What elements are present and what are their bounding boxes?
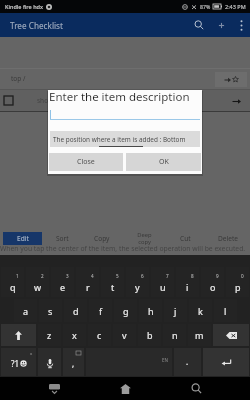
button[interactable]: Search <box>188 13 210 37</box>
button[interactable]: Home <box>113 377 137 400</box>
button[interactable]: w <box>26 267 49 297</box>
staticText: 4 <box>91 273 94 279</box>
staticText: j <box>174 305 177 317</box>
staticText: o <box>210 281 216 293</box>
button[interactable]: Cut <box>167 231 203 246</box>
staticText: n <box>172 329 178 341</box>
staticText: z <box>47 329 52 341</box>
button[interactable]: c <box>88 324 111 346</box>
staticText: , <box>72 358 75 369</box>
button[interactable]: g <box>114 299 137 322</box>
staticText: ?1 <box>11 358 20 369</box>
staticText: w <box>34 281 42 293</box>
button[interactable]: Hide keyboard <box>42 377 66 400</box>
staticText: x <box>30 351 33 357</box>
button[interactable]: Close <box>49 153 123 171</box>
button[interactable]: e <box>51 267 74 297</box>
staticText: v <box>122 329 127 341</box>
staticText: Cut <box>180 234 191 243</box>
staticText: EN <box>162 357 169 363</box>
staticText: 9 <box>216 273 219 279</box>
staticText: s <box>48 305 53 317</box>
button[interactable]: Sort <box>44 231 80 246</box>
button[interactable]: f <box>89 299 112 322</box>
button[interactable]: r <box>76 267 99 297</box>
staticText: OK <box>159 157 169 167</box>
staticText: The position where a item is added : Bot… <box>53 135 186 144</box>
button[interactable]: Move item <box>222 90 250 112</box>
button[interactable]: . <box>174 348 201 376</box>
staticText: Sort <box>56 234 69 243</box>
button[interactable]: More options <box>232 13 250 37</box>
button[interactable]: ?1 <box>1 348 36 376</box>
button[interactable]: y <box>126 267 149 297</box>
staticText: g <box>123 305 129 317</box>
staticText: k <box>198 305 203 317</box>
button[interactable]: v <box>113 324 136 346</box>
staticText: u <box>160 281 166 293</box>
button[interactable]: Deep copy <box>131 231 157 246</box>
staticText: d <box>73 305 79 317</box>
staticText: Close <box>77 157 95 167</box>
button[interactable]: Add to favourites <box>215 72 247 87</box>
staticText: Deep copy <box>137 231 152 246</box>
staticText: top / <box>11 74 26 83</box>
button[interactable]: b <box>138 324 161 346</box>
button[interactable]: h <box>139 299 162 322</box>
staticText: a <box>23 305 29 317</box>
button[interactable]: Search <box>184 377 208 400</box>
staticText: sho <box>37 96 49 105</box>
staticText: 2 <box>41 273 44 279</box>
button[interactable]: a <box>14 299 37 322</box>
staticText: . <box>186 356 189 367</box>
staticText: p <box>235 281 241 293</box>
staticText: q <box>10 281 16 293</box>
button[interactable]: j <box>164 299 187 322</box>
staticText: x <box>72 329 77 341</box>
button[interactable]: p <box>226 267 249 297</box>
staticText: 7 <box>166 273 169 279</box>
button[interactable]: , <box>63 348 84 376</box>
button[interactable]: Add item <box>210 13 232 37</box>
staticText: Kindle fire hdx <box>5 3 43 10</box>
staticText: l <box>224 305 227 317</box>
button[interactable]: Voice input <box>38 348 61 376</box>
button[interactable]: i <box>176 267 199 297</box>
button[interactable]: l <box>214 299 237 322</box>
button[interactable]: The position where a item is added : Bot… <box>50 131 200 147</box>
staticText: 3 <box>66 273 69 279</box>
button[interactable]: Enter <box>203 348 249 376</box>
staticText: c <box>97 329 102 341</box>
button[interactable]: o <box>201 267 224 297</box>
button[interactable]: Space <box>86 348 172 376</box>
button[interactable]: d <box>64 299 87 322</box>
button[interactable]: OK <box>126 153 201 171</box>
button[interactable]: x <box>63 324 86 346</box>
staticText: i <box>186 281 189 293</box>
button[interactable]: u <box>151 267 174 297</box>
staticText: h <box>148 305 154 317</box>
button[interactable]: q <box>1 267 24 297</box>
staticText: 8 <box>191 273 194 279</box>
button[interactable]: k <box>189 299 212 322</box>
staticText: When you tap the center of the item, the… <box>0 244 246 253</box>
staticText: Copy <box>94 234 110 243</box>
staticText: Tree Checklist <box>10 20 63 31</box>
staticText: 1 <box>16 273 19 279</box>
button[interactable]: s <box>39 299 62 322</box>
staticText: 87% <box>200 3 211 10</box>
staticText: 6 <box>141 273 144 279</box>
button[interactable]: Backspace <box>213 324 249 346</box>
button[interactable]: m <box>188 324 211 346</box>
button[interactable]: z <box>38 324 61 346</box>
button[interactable]: t <box>101 267 124 297</box>
button[interactable]: Copy <box>84 231 120 246</box>
button[interactable]: n <box>163 324 186 346</box>
button[interactable]: Edit <box>3 232 42 245</box>
staticText: m <box>195 329 204 341</box>
button[interactable]: Delete <box>210 231 246 246</box>
button[interactable]: Shift <box>1 324 36 346</box>
staticText: t <box>111 281 115 293</box>
staticText: 5 <box>116 273 119 279</box>
staticText: f <box>99 305 103 317</box>
